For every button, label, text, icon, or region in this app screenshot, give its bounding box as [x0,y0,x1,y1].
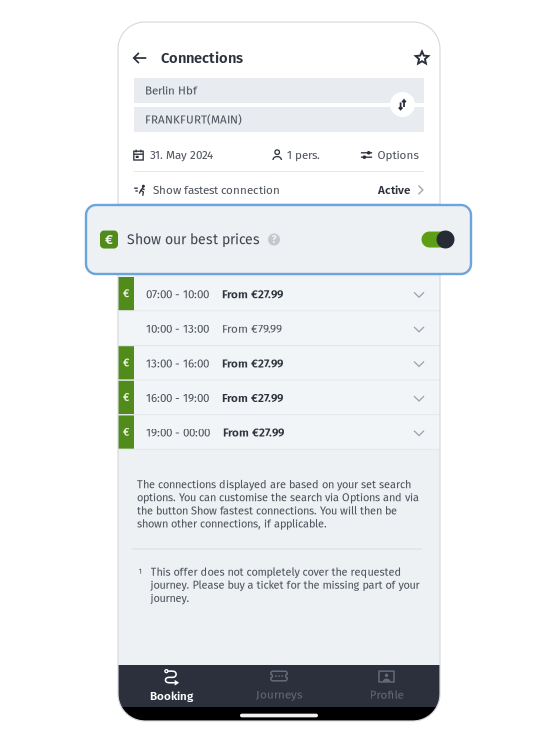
staticText: € [123,426,129,438]
button[interactable]: FRANKFURT(MAIN) [134,107,424,132]
staticText: ? [271,233,276,246]
staticText: Journeys [256,688,302,702]
staticText: 31. May 2024 [150,148,213,162]
staticText: € [123,287,129,300]
staticText: 1 pers. [287,148,320,162]
button[interactable]: Swap stations [390,92,415,117]
button[interactable]: Options [367,143,425,167]
staticText: 13:00 - 16:00 [146,356,209,370]
staticText: This offer does not completely cover the… [150,565,419,605]
staticText: From €79.99 [222,322,282,336]
button[interactable]: Berlin Hbf [134,78,424,103]
staticText: Show our best prices [127,231,260,248]
button[interactable]: € [118,381,440,415]
staticText: From €27.99 [222,391,283,405]
staticText: 19:00 - 00:00 [146,426,210,440]
button[interactable]: 10:00 - 13:00 [118,312,440,346]
button[interactable]: Profile [333,665,440,707]
staticText: The connections displayed are based on y… [137,478,419,530]
staticText: 07:00 - 10:00 [146,287,209,301]
staticText: Active [378,183,410,197]
button[interactable]: Add to favourites [412,48,432,68]
button[interactable]: 31. May 2024 [133,143,272,167]
button[interactable]: Booking [118,665,225,707]
staticText: 1 [138,566,141,576]
staticText: From €27.99 [222,356,283,370]
staticText: Booking [150,689,193,703]
staticText: From €27.99 [223,426,284,440]
button[interactable]: Show fastest connection [118,177,440,203]
button[interactable]: 1 pers. [272,143,367,167]
staticText: € [123,391,129,404]
button[interactable]: € [118,346,440,381]
staticText: Profile [369,688,403,702]
button[interactable]: Back [127,45,153,71]
staticText: € [123,356,129,369]
button[interactable]: € [86,205,471,274]
staticText: FRANKFURT(MAIN) [145,112,242,126]
staticText: 10:00 - 13:00 [146,322,209,336]
staticText: From €27.99 [222,287,283,301]
staticText: Show fastest connection [153,183,280,197]
button[interactable]: € [118,415,440,450]
staticText: Berlin Hbf [145,83,197,97]
button[interactable]: € [118,277,440,312]
staticText: Options [377,148,418,162]
button[interactable]: Journeys [225,665,333,707]
staticText: Connections [161,49,243,67]
staticText: € [105,231,113,247]
staticText: 16:00 - 19:00 [146,391,209,405]
